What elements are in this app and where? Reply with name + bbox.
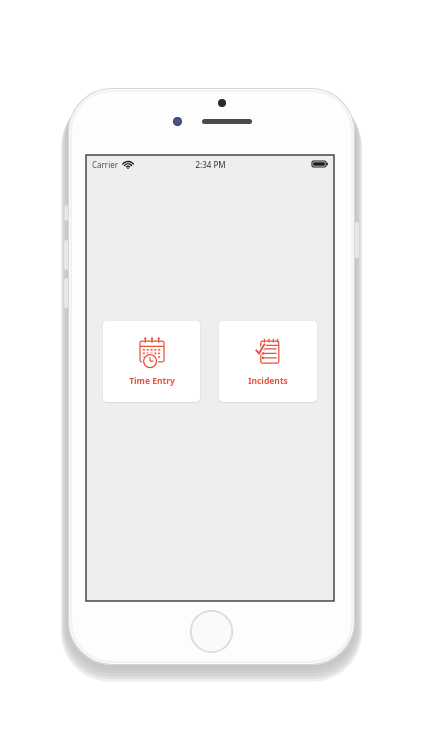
staticText: 2:34 PM bbox=[195, 159, 226, 170]
staticText: Carrier bbox=[92, 159, 119, 170]
staticText: Time Entry bbox=[129, 375, 175, 387]
button[interactable]: Time Entry bbox=[103, 321, 200, 402]
staticText: Incidents bbox=[248, 375, 288, 387]
button[interactable]: Incidents bbox=[219, 321, 317, 402]
